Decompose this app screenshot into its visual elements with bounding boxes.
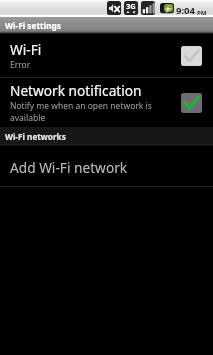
button[interactable]: Wi-Fi: [0, 34, 213, 77]
staticText: 3G: [126, 1, 136, 11]
staticText: available: [10, 112, 46, 124]
staticText: Add Wi-Fi network: [10, 158, 128, 177]
staticText: PM: [197, 9, 207, 17]
staticText: Wi-Fi: [10, 40, 42, 59]
button[interactable]: Add Wi-Fi network: [0, 146, 213, 186]
other: Silent mode: [107, 1, 121, 15]
other: Battery charging: [160, 1, 174, 15]
staticText: 9:04: [176, 4, 195, 17]
other: Toggle: [181, 93, 202, 113]
other: Toggle: [181, 46, 202, 66]
staticText: Wi-Fi networks: [5, 131, 66, 142]
staticText: Network notification: [10, 81, 142, 100]
button[interactable]: Network notification: [0, 78, 213, 127]
staticText: Wi-Fi settings: [5, 20, 61, 31]
other: 3G mobile data: [124, 1, 138, 15]
other: Signal strength: [141, 1, 155, 15]
staticText: Error: [10, 59, 31, 71]
staticText: Notify me when an open network is: [10, 100, 152, 112]
